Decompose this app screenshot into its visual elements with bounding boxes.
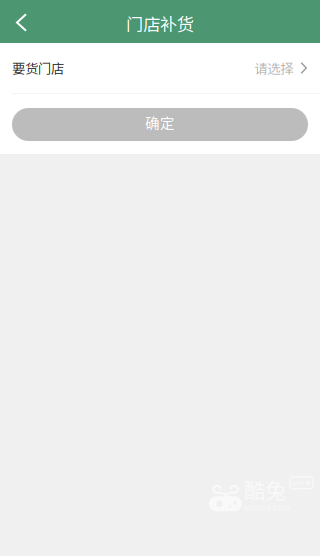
button[interactable]: Back [0, 0, 37, 43]
staticText: 酷兔 [244, 474, 286, 505]
staticText: 要货门店 [12, 58, 64, 78]
button[interactable]: 确定 [12, 108, 308, 141]
staticText: 门店补货 [126, 11, 194, 36]
staticText: 请选择 [254, 58, 293, 78]
button[interactable]: 要货门店 [0, 43, 320, 93]
staticText: 确定 [145, 112, 175, 133]
